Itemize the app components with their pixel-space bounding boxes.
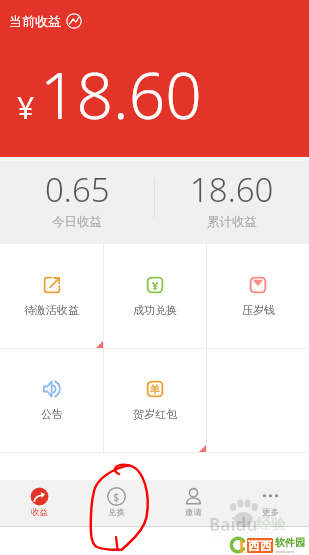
button[interactable]: 压岁钱 <box>207 244 309 348</box>
button[interactable]: 18.60 <box>154 155 309 242</box>
button[interactable]: 更多 <box>232 479 309 526</box>
staticText: 收益 <box>31 507 48 518</box>
staticText: 贺岁红包 <box>133 407 177 421</box>
staticText: Baidu <box>209 513 258 536</box>
button[interactable]: 羊 <box>104 349 206 452</box>
button[interactable]: 收益 <box>0 479 78 526</box>
other: Trend <box>66 13 82 29</box>
staticText: ¥ <box>152 278 159 293</box>
staticText: 西西 <box>248 538 272 553</box>
staticText: 公告 <box>41 407 63 421</box>
staticText: 0.65 <box>45 167 110 212</box>
button[interactable]: 待激活收益 <box>0 244 103 348</box>
staticText: 累计收益 <box>207 214 257 230</box>
staticText: cncrk.com <box>275 549 295 554</box>
button[interactable]: ¥ <box>104 244 206 348</box>
staticText: 软件园 <box>275 536 305 549</box>
staticText: 压岁钱 <box>242 303 275 317</box>
staticText: 羊 <box>150 383 160 396</box>
button[interactable]: 邀请 <box>155 479 232 526</box>
button[interactable]: $ <box>78 479 155 526</box>
button[interactable]: 公告 <box>0 349 103 452</box>
staticText: jingyan.baidu.com <box>214 529 275 539</box>
staticText: 更多 <box>262 507 279 518</box>
staticText: 今日收益 <box>52 214 102 230</box>
staticText: 待激活收益 <box>24 303 79 317</box>
staticText: $ <box>113 489 120 504</box>
staticText: 当前收益 <box>9 13 61 29</box>
staticText: 成功兑换 <box>133 303 177 317</box>
staticText: 兑换 <box>108 507 125 518</box>
staticText: 18.60 <box>190 167 274 212</box>
button[interactable]: 0.65 <box>0 155 154 242</box>
staticText: 18.60 <box>40 51 202 138</box>
staticText: 经验 <box>256 515 286 534</box>
staticText: 邀请 <box>185 507 202 518</box>
staticText: ¥ <box>17 87 35 128</box>
